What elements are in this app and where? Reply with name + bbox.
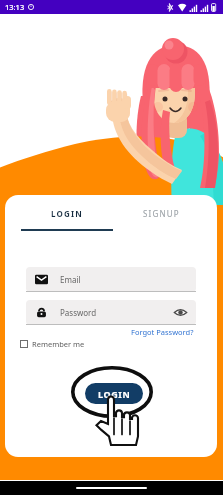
staticText: SIGNUP (143, 208, 180, 219)
button[interactable]: Forgot Password? (129, 325, 196, 339)
button[interactable]: Remember me (18, 337, 87, 351)
button[interactable]: Password (26, 300, 196, 325)
staticText: Remember me (32, 339, 85, 349)
staticText: 13:13 (5, 2, 25, 12)
button[interactable]: Show password (174, 306, 187, 319)
staticText: Email (60, 274, 81, 285)
staticText: Forgot Password? (131, 327, 194, 337)
button[interactable]: Email (26, 267, 196, 292)
staticText: LOGIN (51, 208, 84, 219)
staticText: LOGIN (98, 388, 131, 400)
button[interactable]: LOGIN (21, 197, 113, 233)
button[interactable]: SIGNUP (115, 197, 207, 233)
staticText: Password (60, 307, 97, 318)
button[interactable]: LOGIN (85, 383, 143, 404)
